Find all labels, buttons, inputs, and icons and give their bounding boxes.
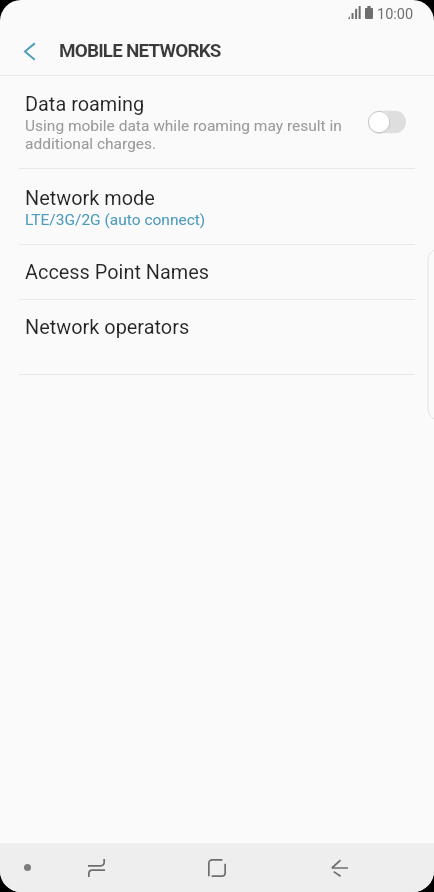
- button[interactable]: Back: [321, 850, 357, 886]
- staticText: Network mode: [25, 187, 155, 210]
- button[interactable]: Data roaming: [365, 106, 411, 138]
- staticText: Using mobile data while roaming may resu…: [25, 117, 345, 153]
- button[interactable]: Keyboard: [9, 849, 45, 885]
- button[interactable]: Access Point Names: [0, 245, 434, 299]
- button[interactable]: Network mode: [0, 169, 434, 244]
- button[interactable]: Data roaming: [0, 76, 434, 168]
- button[interactable]: Recent apps: [78, 850, 114, 886]
- staticText: MOBILE NETWORKS: [59, 39, 221, 61]
- staticText: Network operators: [25, 316, 190, 339]
- staticText: 10:00: [377, 6, 414, 23]
- staticText: Access Point Names: [25, 261, 210, 284]
- staticText: LTE/3G/2G (auto connect): [25, 211, 206, 229]
- staticText: Data roaming: [25, 93, 145, 116]
- button[interactable]: Navigate up: [11, 33, 47, 69]
- button[interactable]: Network operators: [0, 300, 434, 354]
- button[interactable]: Home: [199, 850, 235, 886]
